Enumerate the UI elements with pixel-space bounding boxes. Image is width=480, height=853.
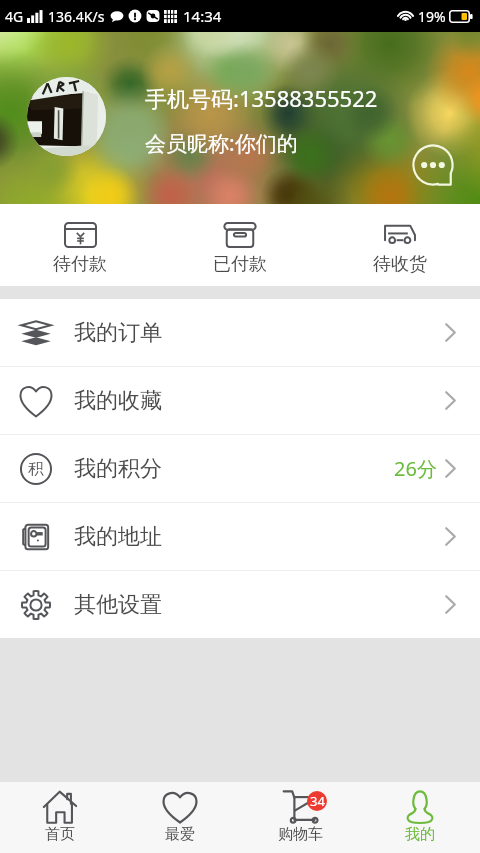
staticText: 我的 xyxy=(405,825,435,844)
staticText: 手机号码:13588355522 xyxy=(145,83,378,113)
button[interactable]: 我的 xyxy=(360,782,480,853)
button[interactable]: 积 xyxy=(0,435,480,502)
staticText: 已付款 xyxy=(213,253,267,276)
staticText: 我的地址 xyxy=(74,523,162,551)
staticText: 我的积分 xyxy=(74,455,162,483)
button[interactable]: 待付款 xyxy=(0,204,160,286)
staticText: 14:34 xyxy=(183,6,222,26)
button[interactable]: 其他设置 xyxy=(0,571,480,638)
staticText: 首页 xyxy=(45,825,75,844)
staticText: 待收货 xyxy=(373,253,427,276)
staticText: 购物车 xyxy=(278,825,323,844)
button[interactable]: 待收货 xyxy=(320,204,480,286)
staticText: 34 xyxy=(310,792,325,810)
button[interactable]: 最爱 xyxy=(120,782,240,853)
staticText: 26分 xyxy=(394,455,437,482)
button[interactable]: 34 xyxy=(240,782,360,853)
staticText: 19% xyxy=(418,7,446,26)
button[interactable]: 我的订单 xyxy=(0,299,480,366)
staticText: 我的订单 xyxy=(74,319,162,347)
staticText: 136.4K/s xyxy=(48,7,105,26)
button[interactable]: 首页 xyxy=(0,782,120,853)
button[interactable]: Messages xyxy=(409,141,457,189)
staticText: 我的收藏 xyxy=(74,387,162,415)
staticText: 其他设置 xyxy=(74,591,162,619)
staticText: 待付款 xyxy=(53,253,107,276)
staticText: 会员昵称:你们的 xyxy=(145,129,298,158)
staticText: 积 xyxy=(28,459,44,479)
staticText: 4G xyxy=(5,7,24,26)
staticText: 最爱 xyxy=(165,825,195,844)
button[interactable]: 我的收藏 xyxy=(0,367,480,434)
button[interactable]: 已付款 xyxy=(160,204,320,286)
button[interactable]: Profile photo xyxy=(27,77,106,156)
button[interactable]: 我的地址 xyxy=(0,503,480,570)
